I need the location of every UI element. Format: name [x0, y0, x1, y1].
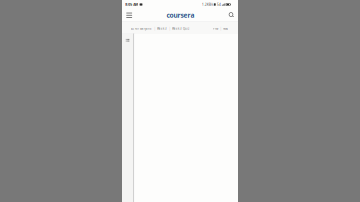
button[interactable]: Next	[223, 27, 228, 30]
button[interactable]: Prev	[213, 27, 218, 30]
staticText: Prev	[213, 27, 218, 30]
button[interactable]: AI For Everyone	[131, 27, 152, 30]
staticText: AI For Everyone	[131, 27, 152, 30]
staticText: Week 3	[157, 27, 167, 30]
staticText: coursera	[166, 11, 194, 20]
staticText: 54	[217, 2, 221, 7]
staticText: |	[218, 27, 223, 30]
staticText: |	[152, 27, 157, 30]
button[interactable]: Week 3 Quiz	[172, 27, 189, 30]
button[interactable]: Menu	[123, 9, 135, 21]
staticText: 1.2KB/s	[202, 2, 213, 6]
staticText: |	[167, 27, 172, 30]
staticText: Next	[223, 27, 228, 30]
staticText: 8:05 AM	[125, 2, 138, 7]
button[interactable]: Search	[226, 9, 237, 21]
button[interactable]: Week 3	[157, 27, 167, 30]
button[interactable]: Course outline	[122, 33, 133, 46]
staticText: Week 3 Quiz	[172, 27, 189, 30]
